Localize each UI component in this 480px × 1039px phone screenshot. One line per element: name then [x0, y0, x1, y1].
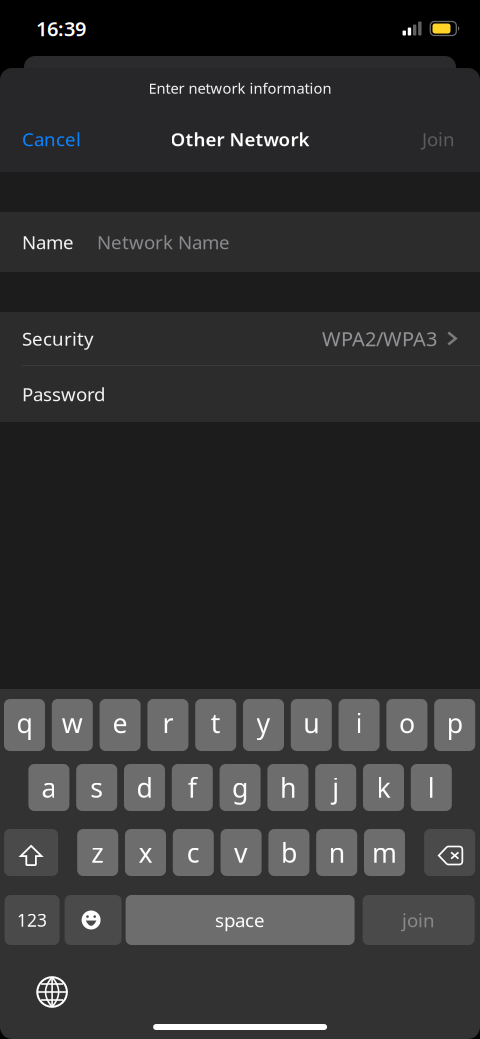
staticText: Enter network information [148, 78, 331, 98]
button[interactable]: space [126, 895, 355, 945]
button[interactable]: e [100, 699, 141, 751]
staticText: r [162, 705, 173, 741]
button[interactable]: u [291, 699, 332, 751]
button[interactable]: h [267, 764, 308, 811]
button[interactable]: t [195, 699, 236, 751]
button[interactable]: Emoji [65, 895, 122, 945]
staticText: k [376, 770, 390, 805]
button[interactable]: v [221, 829, 262, 876]
staticText: Network Name [97, 230, 230, 254]
staticText: f [188, 770, 197, 805]
staticText: Password [22, 382, 105, 406]
button[interactable]: b [268, 829, 309, 876]
staticText: v [234, 835, 248, 870]
staticText: i [356, 705, 363, 741]
staticText: Join [422, 127, 455, 151]
staticText: p [447, 705, 463, 741]
staticText: b [281, 835, 297, 870]
button[interactable]: l [411, 764, 452, 811]
staticText: z [91, 835, 104, 870]
button[interactable]: r [147, 699, 188, 751]
staticText: j [332, 770, 339, 805]
staticText: w [62, 705, 83, 741]
staticText: c [187, 835, 200, 870]
staticText: Security [22, 326, 94, 351]
staticText: WPA2/WPA3 [322, 325, 437, 352]
button[interactable]: j [315, 764, 356, 811]
staticText: space [215, 908, 265, 932]
button[interactable]: y [243, 699, 284, 751]
staticText: u [303, 705, 319, 741]
staticText: m [372, 835, 397, 870]
staticText: l [428, 770, 435, 805]
button[interactable]: Cancel [0, 113, 101, 165]
staticText: Cancel [22, 127, 81, 151]
staticText: s [90, 770, 103, 805]
button[interactable]: x [125, 829, 166, 876]
button[interactable]: Delete [424, 829, 475, 876]
button[interactable]: z [77, 829, 118, 876]
staticText: t [211, 705, 221, 741]
button[interactable]: Password [0, 366, 480, 422]
button[interactable]: w [52, 699, 93, 751]
button[interactable]: i [339, 699, 380, 751]
button[interactable]: m [364, 829, 405, 876]
staticText: Other Network [170, 127, 309, 151]
staticText: e [113, 705, 128, 741]
staticText: o [399, 705, 415, 741]
staticText: h [280, 770, 296, 805]
button[interactable]: Next keyboard [31, 971, 73, 1013]
staticText: g [232, 770, 248, 805]
button[interactable]: p [434, 699, 475, 751]
staticText: Name [22, 230, 74, 254]
button[interactable]: 123 [5, 895, 60, 945]
button[interactable]: q [4, 699, 45, 751]
button[interactable]: Security [0, 312, 480, 365]
button[interactable]: d [124, 764, 165, 811]
button[interactable]: Join [402, 113, 480, 165]
staticText: x [138, 835, 152, 870]
staticText: q [16, 705, 32, 741]
staticText: a [41, 770, 56, 805]
button[interactable]: c [173, 829, 214, 876]
staticText: d [136, 770, 152, 805]
button[interactable]: n [316, 829, 357, 876]
button[interactable]: g [220, 764, 261, 811]
staticText: 16:39 [36, 15, 86, 42]
staticText: y [256, 705, 270, 741]
button[interactable]: k [363, 764, 404, 811]
button[interactable]: f [172, 764, 213, 811]
button[interactable]: join [363, 895, 475, 945]
button[interactable]: Shift [4, 829, 58, 876]
staticText: join [402, 908, 435, 932]
staticText: n [329, 835, 345, 870]
button[interactable]: o [386, 699, 427, 751]
staticText: 123 [17, 908, 47, 931]
button[interactable]: s [76, 764, 117, 811]
button[interactable]: a [28, 764, 69, 811]
